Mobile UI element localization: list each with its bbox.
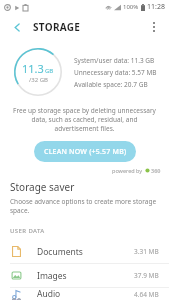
staticText: Available space: 20.7 GB <box>74 80 148 89</box>
staticText: Choose advance options to create more st… <box>10 197 159 215</box>
staticText: 360 <box>151 167 161 174</box>
staticText: 11:28 <box>147 2 165 12</box>
staticText: 3.31 MB <box>134 247 159 256</box>
staticText: System/user data: 11.3 GB <box>74 56 155 65</box>
button[interactable]: Images <box>0 264 169 287</box>
button[interactable]: Documents <box>0 240 169 263</box>
button[interactable]: Back <box>8 18 26 36</box>
staticText: GB <box>45 67 54 75</box>
button[interactable]: More options <box>145 18 163 36</box>
staticText: STORAGE <box>33 20 81 34</box>
staticText: USER DATA <box>10 227 45 235</box>
staticText: Free up storage space by deleting unnece… <box>12 106 157 133</box>
staticText: 4.64 MB <box>134 290 159 299</box>
staticText: 11.3 <box>22 61 44 76</box>
staticText: CLEAN NOW (+5.57 MB) <box>44 147 127 157</box>
button[interactable]: Audio <box>0 288 169 300</box>
button[interactable]: CLEAN NOW (+5.57 MB) <box>34 141 136 162</box>
staticText: Documents <box>37 246 83 258</box>
staticText: Storage saver <box>10 180 75 194</box>
staticText: Unnecessary data: 5.57 MB <box>74 68 157 77</box>
staticText: 37.9 MB <box>134 271 159 280</box>
staticText: powered by <box>112 167 143 174</box>
staticText: Audio <box>37 288 61 300</box>
staticText: 100% <box>123 3 139 11</box>
staticText: /32 GB <box>29 76 48 84</box>
staticText: Images <box>37 270 67 282</box>
